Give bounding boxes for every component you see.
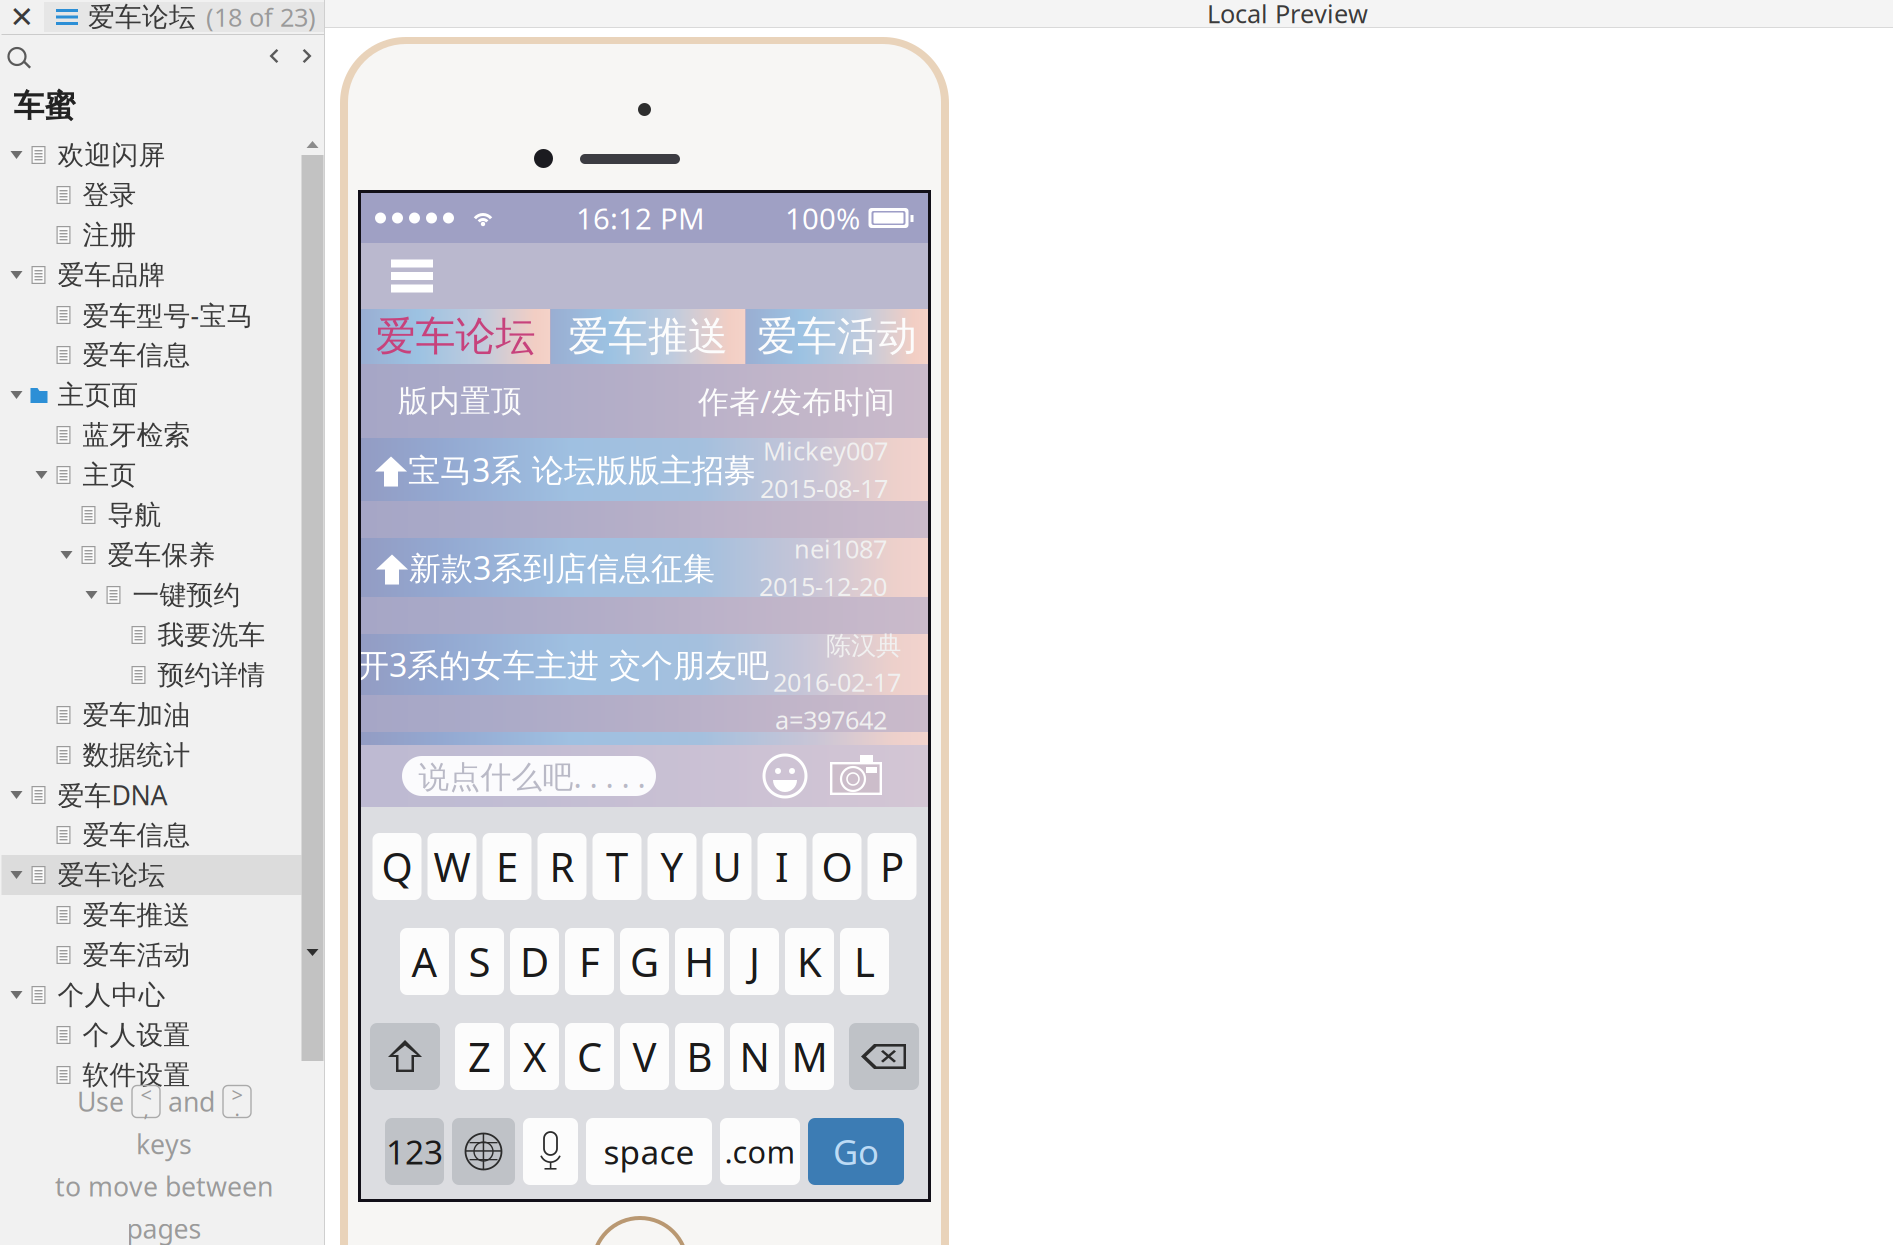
- button[interactable]: A: [400, 928, 449, 995]
- button[interactable]: 爱车保养: [1, 535, 304, 575]
- button[interactable]: Shift: [370, 1023, 440, 1090]
- staticText: ,: [143, 1095, 148, 1122]
- staticText: 宝马3系 论坛版版主招募: [408, 448, 756, 491]
- staticText: 爱车DNA: [57, 777, 167, 813]
- button[interactable]: space: [586, 1118, 712, 1185]
- staticText: 一键预约: [132, 578, 240, 612]
- staticText: <: [140, 1081, 151, 1108]
- button[interactable]: W: [427, 833, 476, 900]
- button[interactable]: 数据统计: [1, 735, 304, 775]
- staticText: M: [791, 1029, 827, 1084]
- button[interactable]: 一键预约: [1, 575, 304, 615]
- button[interactable]: Next keyboard: [452, 1118, 515, 1185]
- button[interactable]: G: [620, 928, 669, 995]
- button[interactable]: 宝马3系 论坛版版主招募: [361, 438, 928, 501]
- button[interactable]: Dictate: [523, 1118, 578, 1185]
- button[interactable]: 导航: [1, 495, 304, 535]
- staticText: 车蜜: [13, 87, 75, 125]
- button[interactable]: 爱车推送: [1, 895, 304, 935]
- button[interactable]: L: [840, 928, 889, 995]
- button[interactable]: [361, 732, 928, 745]
- button[interactable]: X: [510, 1023, 559, 1090]
- button[interactable]: .com: [720, 1118, 800, 1185]
- staticText: 数据统计: [82, 738, 190, 772]
- staticText: 预约详情: [157, 658, 265, 692]
- staticText: E: [496, 839, 518, 894]
- button[interactable]: 爱车信息: [1, 335, 304, 375]
- button[interactable]: Delete: [849, 1023, 919, 1090]
- button[interactable]: K: [785, 928, 834, 995]
- button[interactable]: M: [785, 1023, 834, 1090]
- button[interactable]: Z: [455, 1023, 504, 1090]
- button[interactable]: 爱车论坛: [1, 855, 304, 895]
- staticText: T: [606, 839, 628, 894]
- staticText: to move between: [55, 1168, 273, 1204]
- button[interactable]: 说点什么吧. . . . .: [402, 756, 656, 796]
- button[interactable]: 爱车活动: [1, 935, 304, 975]
- button[interactable]: 爱车品牌: [1, 255, 304, 295]
- staticText: 软件设置: [82, 1058, 190, 1092]
- button[interactable]: D: [510, 928, 559, 995]
- button[interactable]: 注册: [1, 215, 304, 255]
- button[interactable]: Camera: [828, 753, 884, 799]
- button[interactable]: 蓝牙检索: [1, 415, 304, 455]
- button[interactable]: 个人设置: [1, 1015, 304, 1055]
- staticText: 爱车推送: [82, 898, 190, 932]
- button[interactable]: 123: [385, 1118, 444, 1185]
- button[interactable]: 我要洗车: [1, 615, 304, 655]
- button[interactable]: S: [455, 928, 504, 995]
- button[interactable]: Previous page: [256, 36, 290, 76]
- staticText: (18 of 23): [206, 0, 316, 34]
- button[interactable]: 登录: [1, 175, 304, 215]
- button[interactable]: J: [730, 928, 779, 995]
- button[interactable]: B: [675, 1023, 724, 1090]
- button[interactable]: 开3系的女车主进 交个朋友吧: [361, 634, 928, 695]
- button[interactable]: N: [730, 1023, 779, 1090]
- staticText: Go: [833, 1128, 879, 1175]
- button[interactable]: Go: [808, 1118, 904, 1185]
- button[interactable]: 个人中心: [1, 975, 304, 1015]
- button[interactable]: 预约详情: [1, 655, 304, 695]
- button[interactable]: E: [482, 833, 531, 900]
- button[interactable]: 爱车论坛: [361, 309, 550, 364]
- button[interactable]: Y: [647, 833, 696, 900]
- button[interactable]: Emoji: [760, 751, 810, 801]
- button[interactable]: Close: [0, 0, 44, 34]
- staticText: 爱车活动: [757, 311, 917, 362]
- button[interactable]: T: [592, 833, 641, 900]
- button[interactable]: Next page: [290, 36, 324, 76]
- button[interactable]: F: [565, 928, 614, 995]
- button[interactable]: R: [537, 833, 586, 900]
- button[interactable]: 爱车信息: [1, 815, 304, 855]
- button[interactable]: Q: [372, 833, 421, 900]
- staticText: D: [520, 934, 549, 989]
- staticText: Q: [381, 839, 412, 894]
- button[interactable]: H: [675, 928, 724, 995]
- button[interactable]: 爱车活动: [746, 309, 928, 364]
- button[interactable]: 爱车推送: [551, 309, 745, 364]
- staticText: Y: [660, 839, 683, 894]
- button[interactable]: O: [812, 833, 861, 900]
- button[interactable]: Menu: [379, 243, 445, 309]
- staticText: F: [579, 934, 600, 989]
- staticText: 爱车信息: [82, 338, 190, 372]
- staticText: 陈汉典: [826, 630, 901, 662]
- button[interactable]: V: [620, 1023, 669, 1090]
- button[interactable]: 新款3系到店信息征集: [361, 538, 928, 597]
- button[interactable]: 爱车加油: [1, 695, 304, 735]
- button[interactable]: 欢迎闪屏: [1, 135, 304, 175]
- staticText: 欢迎闪屏: [57, 138, 165, 172]
- button[interactable]: U: [702, 833, 751, 900]
- staticText: .com: [724, 1131, 795, 1172]
- staticText: 新款3系到店信息征集: [409, 546, 715, 589]
- button[interactable]: 主页: [1, 455, 304, 495]
- button[interactable]: Search: [3, 36, 37, 76]
- staticText: 说点什么吧. . . . .: [418, 755, 645, 797]
- button[interactable]: 爱车DNA: [1, 775, 304, 815]
- button[interactable]: 软件设置: [1, 1055, 304, 1095]
- button[interactable]: P: [867, 833, 916, 900]
- button[interactable]: 主页面: [1, 375, 304, 415]
- button[interactable]: 爱车型号-宝马: [1, 295, 304, 335]
- button[interactable]: C: [565, 1023, 614, 1090]
- button[interactable]: I: [757, 833, 806, 900]
